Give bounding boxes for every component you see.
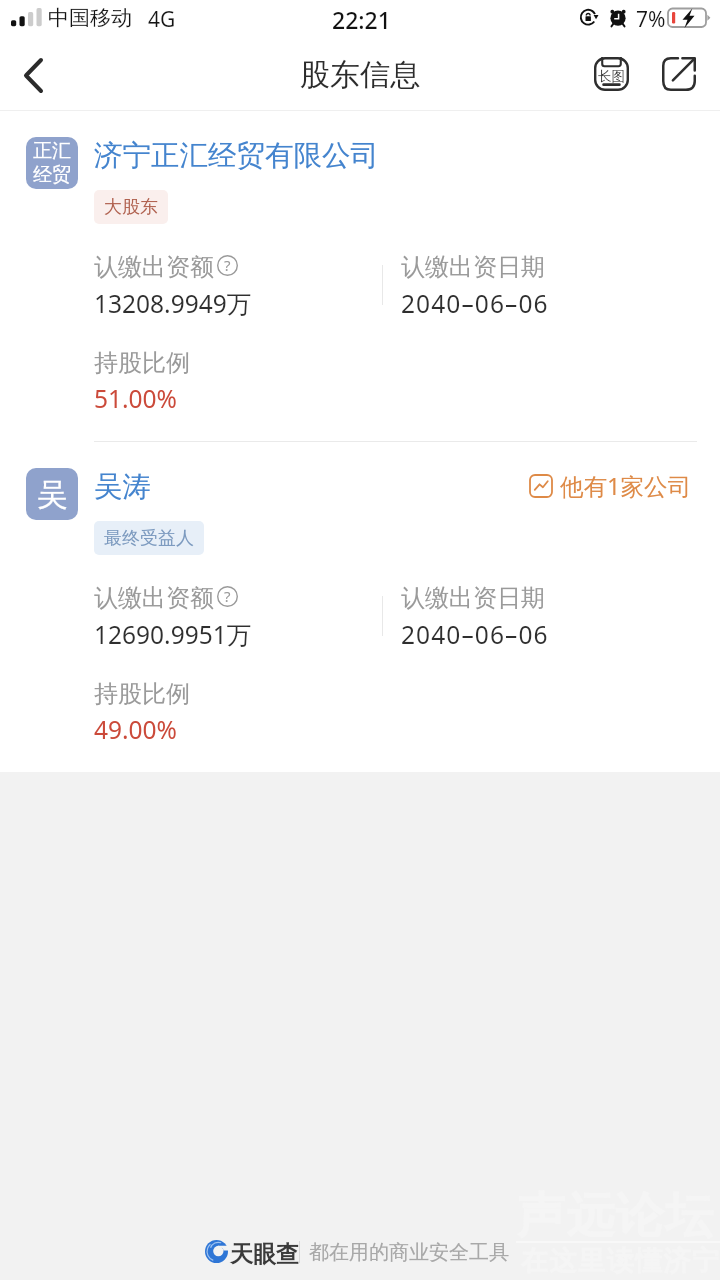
staticText: 7% <box>636 5 666 34</box>
button[interactable]: 认缴出资额说明 <box>217 255 238 276</box>
button[interactable]: 返回 <box>0 40 66 110</box>
staticText: 认缴出资日期 <box>401 252 545 282</box>
staticText: 他有1家公司 <box>560 470 691 502</box>
staticText: 都在用的商业安全工具 <box>309 1240 509 1265</box>
staticText: 经贸 <box>33 163 71 187</box>
staticText: 12690.9951万 <box>94 618 252 651</box>
staticText: 持股比例 <box>94 679 190 709</box>
staticText: 4G <box>148 5 176 34</box>
staticText: 22:21 <box>332 4 391 35</box>
staticText: 中国移动 <box>48 5 132 31</box>
staticText: 股东信息 <box>300 56 420 94</box>
button[interactable]: 吴 <box>0 442 720 772</box>
button[interactable]: 认缴出资额说明 <box>217 586 238 607</box>
staticText: 大股东 <box>104 196 158 219</box>
staticText: 认缴出资额 <box>94 252 214 282</box>
staticText: 吴 <box>37 475 68 514</box>
staticText: 51.00% <box>94 382 177 415</box>
button[interactable]: 分享 <box>645 40 712 110</box>
staticText: 2040–06–06 <box>401 618 549 651</box>
staticText: ? <box>224 586 231 606</box>
staticText: 天眼查 <box>230 1240 299 1269</box>
button[interactable]: 他有1家公司 <box>529 469 691 503</box>
staticText: 吴涛 <box>94 469 151 505</box>
button[interactable]: 生成长图 <box>579 40 646 110</box>
staticText: 认缴出资日期 <box>401 583 545 613</box>
staticText: 济宁正汇经贸有限公司 <box>94 138 379 174</box>
staticText: ? <box>224 255 231 275</box>
staticText: 最终受益人 <box>104 527 194 550</box>
staticText: 持股比例 <box>94 348 190 378</box>
staticText: 长图 <box>598 68 625 85</box>
staticText: 认缴出资额 <box>94 583 214 613</box>
staticText: 正汇 <box>33 139 71 163</box>
staticText: 2040–06–06 <box>401 287 549 320</box>
button[interactable]: 正汇 <box>0 111 720 441</box>
staticText: 49.00% <box>94 713 177 746</box>
staticText: 13208.9949万 <box>94 287 252 320</box>
